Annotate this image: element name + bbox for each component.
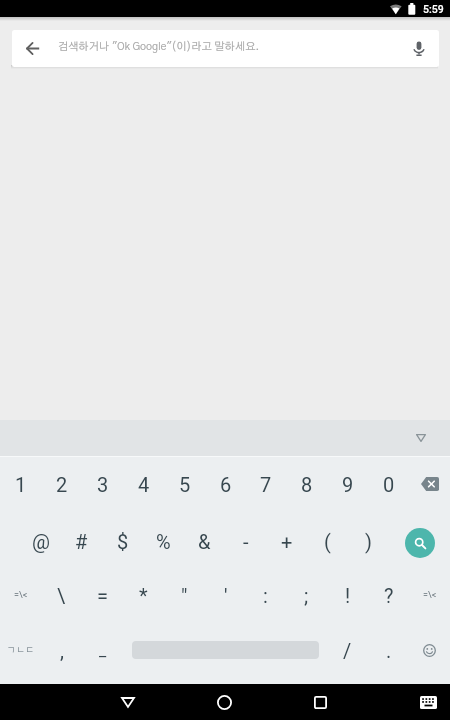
- staticText: 5:59: [423, 3, 444, 15]
- button[interactable]: [200, 684, 248, 720]
- staticText: ,: [60, 639, 64, 662]
- staticText: /: [343, 639, 352, 662]
- button[interactable]: -: [225, 513, 266, 569]
- staticText: *: [139, 584, 148, 607]
- button[interactable]: ': [205, 567, 246, 623]
- staticText: (: [324, 530, 331, 553]
- button[interactable]: [406, 684, 450, 720]
- button[interactable]: !: [327, 567, 368, 623]
- button[interactable]: =: [82, 567, 123, 623]
- button[interactable]: [400, 30, 438, 67]
- button[interactable]: [14, 30, 52, 67]
- button[interactable]: ;: [286, 567, 327, 623]
- button[interactable]: 3: [82, 456, 123, 512]
- button[interactable]: [409, 622, 450, 678]
- button[interactable]: =\<: [0, 567, 41, 623]
- button[interactable]: ㄱㄴㄷ: [0, 622, 41, 678]
- staticText: +: [281, 530, 293, 553]
- button[interactable]: 2: [41, 456, 82, 512]
- button[interactable]: &: [184, 513, 225, 569]
- button[interactable]: ": [164, 567, 205, 623]
- button[interactable]: @: [20, 513, 61, 569]
- staticText: ): [365, 530, 372, 553]
- button[interactable]: 5: [164, 456, 205, 512]
- button[interactable]: :: [245, 567, 286, 623]
- staticText: =\<: [14, 590, 28, 601]
- button[interactable]: [123, 622, 328, 678]
- button[interactable]: ?: [368, 567, 409, 623]
- button[interactable]: [409, 456, 450, 512]
- button[interactable]: $: [102, 513, 143, 569]
- staticText: 2: [56, 473, 68, 496]
- staticText: 1: [15, 473, 27, 496]
- staticText: 7: [260, 473, 272, 496]
- staticText: !: [345, 584, 351, 607]
- staticText: 4: [138, 473, 150, 496]
- staticText: ?: [384, 584, 394, 607]
- staticText: ㄱㄴㄷ: [7, 646, 34, 655]
- button[interactable]: [104, 684, 152, 720]
- staticText: &: [198, 530, 211, 553]
- staticText: _: [99, 641, 107, 660]
- staticText: =: [97, 584, 108, 607]
- button[interactable]: ): [348, 513, 389, 569]
- staticText: 9: [342, 473, 354, 496]
- button[interactable]: 1: [0, 456, 41, 512]
- staticText: @: [32, 530, 50, 553]
- button[interactable]: [296, 684, 344, 720]
- button[interactable]: 4: [123, 456, 164, 512]
- button[interactable]: _: [82, 622, 123, 678]
- staticText: 3: [97, 473, 109, 496]
- staticText: 5: [179, 473, 191, 496]
- button[interactable]: [398, 420, 443, 456]
- staticText: %: [156, 530, 171, 553]
- button[interactable]: \: [41, 567, 82, 623]
- staticText: \: [57, 584, 66, 607]
- button[interactable]: ,: [41, 622, 82, 678]
- button[interactable]: 검색하거나 "Ok Google"(이)라고 말하세요.: [12, 30, 439, 67]
- staticText: 검색하거나 "Ok Google"(이)라고 말하세요.: [58, 41, 260, 52]
- button[interactable]: 9: [327, 456, 368, 512]
- staticText: #: [75, 530, 88, 553]
- staticText: .: [386, 639, 392, 662]
- staticText: -: [243, 530, 249, 553]
- button[interactable]: [389, 513, 450, 569]
- button[interactable]: 7: [245, 456, 286, 512]
- staticText: ": [181, 584, 188, 607]
- button[interactable]: =\<: [409, 567, 450, 623]
- button[interactable]: 6: [205, 456, 246, 512]
- button[interactable]: *: [123, 567, 164, 623]
- staticText: :: [263, 584, 268, 607]
- staticText: =\<: [423, 590, 437, 601]
- staticText: ;: [304, 584, 309, 607]
- button[interactable]: #: [61, 513, 102, 569]
- button[interactable]: %: [143, 513, 184, 569]
- staticText: ': [224, 584, 228, 607]
- button[interactable]: 0: [368, 456, 409, 512]
- button[interactable]: /: [327, 622, 368, 678]
- staticText: 0: [383, 473, 395, 496]
- button[interactable]: +: [266, 513, 307, 569]
- staticText: 6: [220, 473, 232, 496]
- staticText: 8: [301, 473, 313, 496]
- button[interactable]: (: [307, 513, 348, 569]
- button[interactable]: .: [368, 622, 409, 678]
- staticText: $: [117, 530, 129, 553]
- button[interactable]: 8: [286, 456, 327, 512]
